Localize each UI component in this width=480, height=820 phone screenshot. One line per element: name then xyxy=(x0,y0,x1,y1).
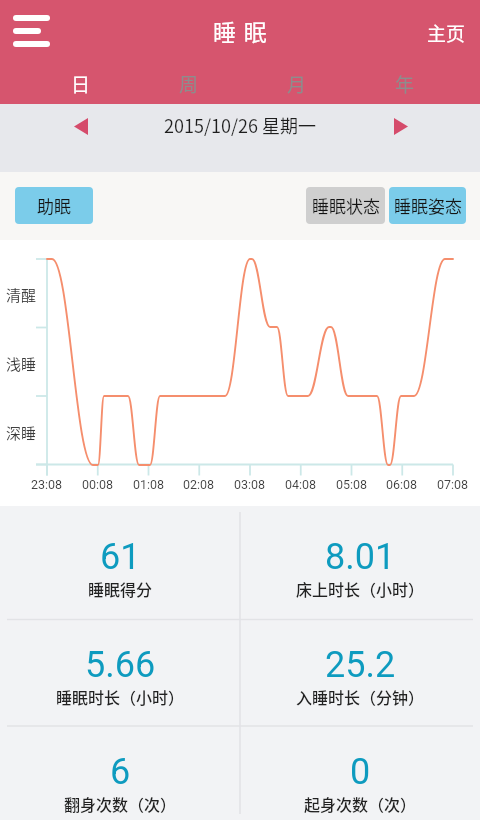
staticText: 04:08 xyxy=(285,477,317,492)
button[interactable]: 6 xyxy=(0,721,240,820)
staticText: 01:08 xyxy=(133,477,165,492)
button[interactable]: 周 xyxy=(135,63,243,105)
button[interactable]: 主页 xyxy=(413,13,480,53)
button[interactable]: 日 xyxy=(27,63,135,105)
button[interactable]: 61 xyxy=(0,506,240,620)
staticText: 05:08 xyxy=(336,477,368,492)
button[interactable]: Next day xyxy=(381,107,420,145)
staticText: 睡眠时长（小时） xyxy=(56,685,185,708)
staticText: 5.66 xyxy=(85,644,156,686)
staticText: 浅睡 xyxy=(6,353,37,375)
button[interactable]: 25.2 xyxy=(240,614,480,721)
button[interactable]: Previous day xyxy=(61,107,100,145)
staticText: 睡眠状态 xyxy=(312,193,380,218)
staticText: 03:08 xyxy=(234,477,266,492)
staticText: 月 xyxy=(287,70,307,98)
staticText: 睡眠得分 xyxy=(88,577,153,600)
staticText: 翻身次数（次） xyxy=(64,792,177,815)
staticText: 主页 xyxy=(427,19,466,47)
staticText: 清醒 xyxy=(6,284,37,306)
staticText: 起身次数（次） xyxy=(304,792,417,815)
button[interactable]: 5.66 xyxy=(0,614,240,721)
button[interactable]: 月 xyxy=(243,63,351,105)
staticText: 深睡 xyxy=(6,422,37,444)
button[interactable]: 年 xyxy=(351,63,459,105)
button[interactable]: 睡眠状态 xyxy=(306,187,385,224)
button[interactable]: Menu xyxy=(3,5,61,57)
staticText: 8.01 xyxy=(325,536,396,578)
staticText: 00:08 xyxy=(82,477,114,492)
staticText: 61 xyxy=(100,536,141,578)
staticText: 07:08 xyxy=(437,477,469,492)
button[interactable]: 睡眠姿态 xyxy=(389,187,466,224)
staticText: 02:08 xyxy=(183,477,215,492)
staticText: 睡 眠 xyxy=(213,14,267,47)
staticText: 06:08 xyxy=(386,477,418,492)
staticText: 助眠 xyxy=(37,193,71,218)
staticText: 年 xyxy=(395,70,415,98)
staticText: 日 xyxy=(71,70,91,98)
staticText: 25.2 xyxy=(325,644,396,686)
staticText: 2015/10/26 星期一 xyxy=(164,112,317,138)
button[interactable]: 8.01 xyxy=(240,506,480,620)
staticText: 睡眠姿态 xyxy=(394,193,462,218)
staticText: 23:08 xyxy=(31,477,63,492)
button[interactable]: 助眠 xyxy=(15,187,93,224)
staticText: 床上时长（小时） xyxy=(296,577,425,600)
staticText: 0 xyxy=(350,751,371,793)
button[interactable]: 0 xyxy=(240,721,480,820)
staticText: 入睡时长（分钟） xyxy=(296,685,425,708)
staticText: 周 xyxy=(179,70,199,98)
staticText: 6 xyxy=(110,751,131,793)
